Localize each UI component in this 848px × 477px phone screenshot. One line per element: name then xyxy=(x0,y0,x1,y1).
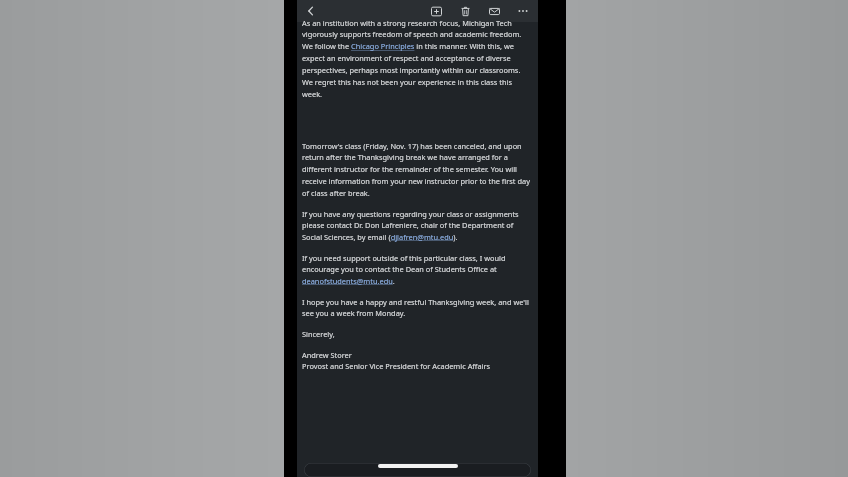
button[interactable]: Archive xyxy=(427,2,445,20)
button[interactable]: More options xyxy=(514,2,532,20)
staticText: If you need support outside of this part… xyxy=(302,253,532,286)
button[interactable]: Back xyxy=(301,1,321,21)
staticText: Tomorrow's class (Friday, Nov. 17) has b… xyxy=(302,141,532,198)
staticText: I hope you have a happy and restful Than… xyxy=(302,297,532,318)
button[interactable]: Reply xyxy=(304,463,531,477)
staticText: If you have any questions regarding your… xyxy=(302,209,532,242)
staticText: Andrew Storer Provost and Senior Vice Pr… xyxy=(302,350,491,371)
staticText: Sincerely, xyxy=(302,329,335,339)
button[interactable]: Mark unread xyxy=(485,2,503,20)
button[interactable]: Delete xyxy=(456,2,474,20)
staticText: As an institution with a strong research… xyxy=(302,18,532,99)
